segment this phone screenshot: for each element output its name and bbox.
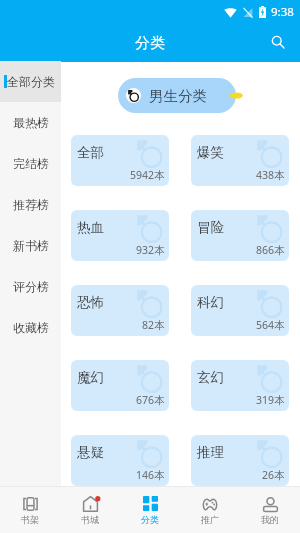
button[interactable]: 全部 (71, 135, 169, 186)
staticText: 5942本 (130, 168, 165, 182)
staticText: 热血 (77, 219, 104, 236)
staticText: 魔幻 (77, 369, 104, 386)
staticText: 冒险 (197, 219, 224, 236)
staticText: 319本 (256, 393, 285, 407)
button[interactable]: 书架 (0, 487, 60, 533)
button[interactable]: 新书榜 (0, 225, 61, 266)
staticText: 438本 (256, 168, 285, 182)
staticText: 866本 (256, 243, 285, 257)
button[interactable]: 我的 (240, 487, 300, 533)
staticText: 最热榜 (13, 115, 49, 130)
button[interactable]: 完结榜 (0, 143, 61, 184)
button[interactable]: 评分榜 (0, 266, 61, 307)
button[interactable]: Search (263, 28, 293, 58)
button[interactable]: 科幻 (191, 285, 289, 336)
staticText: 676本 (136, 393, 165, 407)
staticText: 全部分类 (7, 74, 55, 89)
staticText: 推荐榜 (13, 197, 49, 212)
button[interactable]: 全部分类 (0, 61, 61, 102)
staticText: 推广 (201, 514, 219, 525)
staticText: 评分榜 (13, 279, 49, 294)
staticText: 书架 (21, 514, 39, 525)
staticText: 932本 (136, 243, 165, 257)
staticText: 146本 (136, 468, 165, 482)
staticText: 26本 (262, 468, 285, 482)
button[interactable]: 恐怖 (71, 285, 169, 336)
button[interactable]: 男生分类 (118, 78, 236, 113)
staticText: 全部 (77, 144, 104, 161)
button[interactable]: 收藏榜 (0, 307, 61, 348)
button[interactable]: 分类 (120, 487, 180, 533)
staticText: 9:38 (271, 4, 294, 20)
staticText: 564本 (256, 318, 285, 332)
staticText: 科幻 (197, 294, 224, 311)
staticText: 爆笑 (197, 144, 224, 161)
button[interactable]: 冒险 (191, 210, 289, 261)
staticText: 玄幻 (197, 369, 224, 386)
staticText: 恐怖 (77, 294, 104, 311)
staticText: 收藏榜 (13, 320, 49, 335)
staticText: 书城 (81, 514, 99, 525)
button[interactable]: 推荐榜 (0, 184, 61, 225)
button[interactable]: 推理 (191, 435, 289, 486)
button[interactable]: 魔幻 (71, 360, 169, 411)
staticText: 完结榜 (13, 156, 49, 171)
staticText: 男生分类 (149, 87, 207, 105)
button[interactable]: 最热榜 (0, 102, 61, 143)
staticText: 新书榜 (13, 238, 49, 253)
staticText: 分类 (135, 34, 165, 53)
button[interactable]: 爆笑 (191, 135, 289, 186)
staticText: 悬疑 (77, 444, 104, 461)
staticText: 分类 (141, 514, 159, 525)
button[interactable]: 推广 (180, 487, 240, 533)
button[interactable]: 悬疑 (71, 435, 169, 486)
staticText: 我的 (261, 514, 279, 525)
button[interactable]: 玄幻 (191, 360, 289, 411)
button[interactable]: 书城 (60, 487, 120, 533)
staticText: 推理 (197, 444, 224, 461)
button[interactable]: 热血 (71, 210, 169, 261)
staticText: 82本 (142, 318, 165, 332)
